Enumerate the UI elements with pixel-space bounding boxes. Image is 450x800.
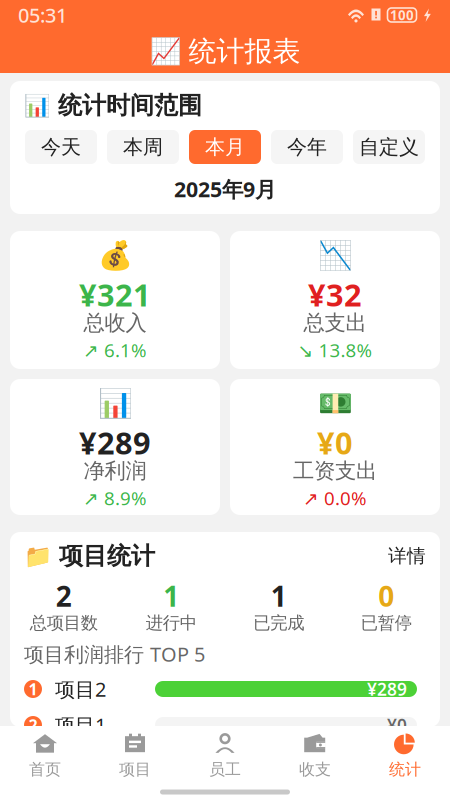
button[interactable]: 员工: [180, 726, 270, 784]
button[interactable]: 详情: [388, 544, 426, 567]
staticText: 已完成: [253, 612, 304, 634]
staticText: 📊: [97, 387, 132, 419]
staticText: 100: [390, 6, 414, 24]
staticText: 项目2: [55, 676, 106, 702]
staticText: 总收入: [83, 310, 146, 336]
staticText: 📈: [149, 37, 181, 66]
staticText: ↘ 13.8%: [297, 338, 372, 362]
staticText: 0: [378, 577, 394, 615]
staticText: 2: [56, 577, 72, 615]
staticText: 首页: [29, 760, 61, 779]
staticText: 净利润: [83, 458, 146, 484]
staticText: 自定义: [359, 135, 419, 159]
button[interactable]: 今天: [25, 130, 97, 164]
button[interactable]: 自定义: [353, 130, 425, 164]
staticText: 工资支出: [293, 458, 377, 484]
staticText: 本月: [205, 135, 245, 159]
staticText: 05:31: [18, 2, 67, 28]
staticText: 今天: [41, 135, 81, 159]
staticText: 进行中: [146, 612, 197, 634]
button[interactable]: 本周: [107, 130, 179, 164]
staticText: 收支: [299, 760, 331, 779]
button[interactable]: 首页: [0, 726, 90, 784]
staticText: 详情: [388, 544, 426, 567]
staticText: 📉: [317, 239, 352, 271]
staticText: 统计报表: [188, 34, 300, 69]
staticText: ¥289: [79, 422, 151, 463]
staticText: 1: [163, 577, 179, 615]
staticText: ¥0: [387, 713, 407, 736]
staticText: ¥289: [367, 677, 407, 700]
staticText: 💵: [317, 387, 352, 419]
staticText: 项目利润排行 TOP 5: [24, 641, 205, 667]
staticText: 项目: [119, 760, 151, 779]
staticText: 项目1: [55, 712, 106, 738]
staticText: 员工: [209, 760, 241, 779]
staticText: 本周: [123, 135, 163, 159]
staticText: ↗ 8.9%: [83, 486, 147, 510]
staticText: 总项目数: [30, 612, 98, 634]
button[interactable]: 统计: [360, 726, 450, 784]
staticText: 📊: [24, 93, 51, 118]
staticText: 2: [28, 714, 37, 736]
staticText: 💰: [97, 239, 132, 271]
button[interactable]: 项目: [90, 726, 180, 784]
staticText: 1: [28, 678, 37, 700]
staticText: 项目统计: [59, 541, 155, 571]
staticText: ¥321: [79, 274, 151, 315]
staticText: ¥0: [317, 422, 353, 463]
button[interactable]: 本月: [189, 130, 261, 164]
staticText: 2025年9月: [174, 175, 276, 203]
button[interactable]: 今年: [271, 130, 343, 164]
staticText: 统计时间范围: [58, 91, 202, 120]
staticText: ↗ 6.1%: [83, 338, 147, 362]
staticText: 已暂停: [361, 612, 412, 634]
staticText: 总支出: [303, 310, 366, 336]
staticText: ↗ 0.0%: [303, 486, 367, 510]
staticText: 统计: [389, 760, 421, 779]
staticText: 📁: [24, 543, 52, 569]
staticText: 今年: [287, 135, 327, 159]
staticText: ¥32: [308, 274, 362, 315]
staticText: 1: [271, 577, 287, 615]
button[interactable]: 收支: [270, 726, 360, 784]
